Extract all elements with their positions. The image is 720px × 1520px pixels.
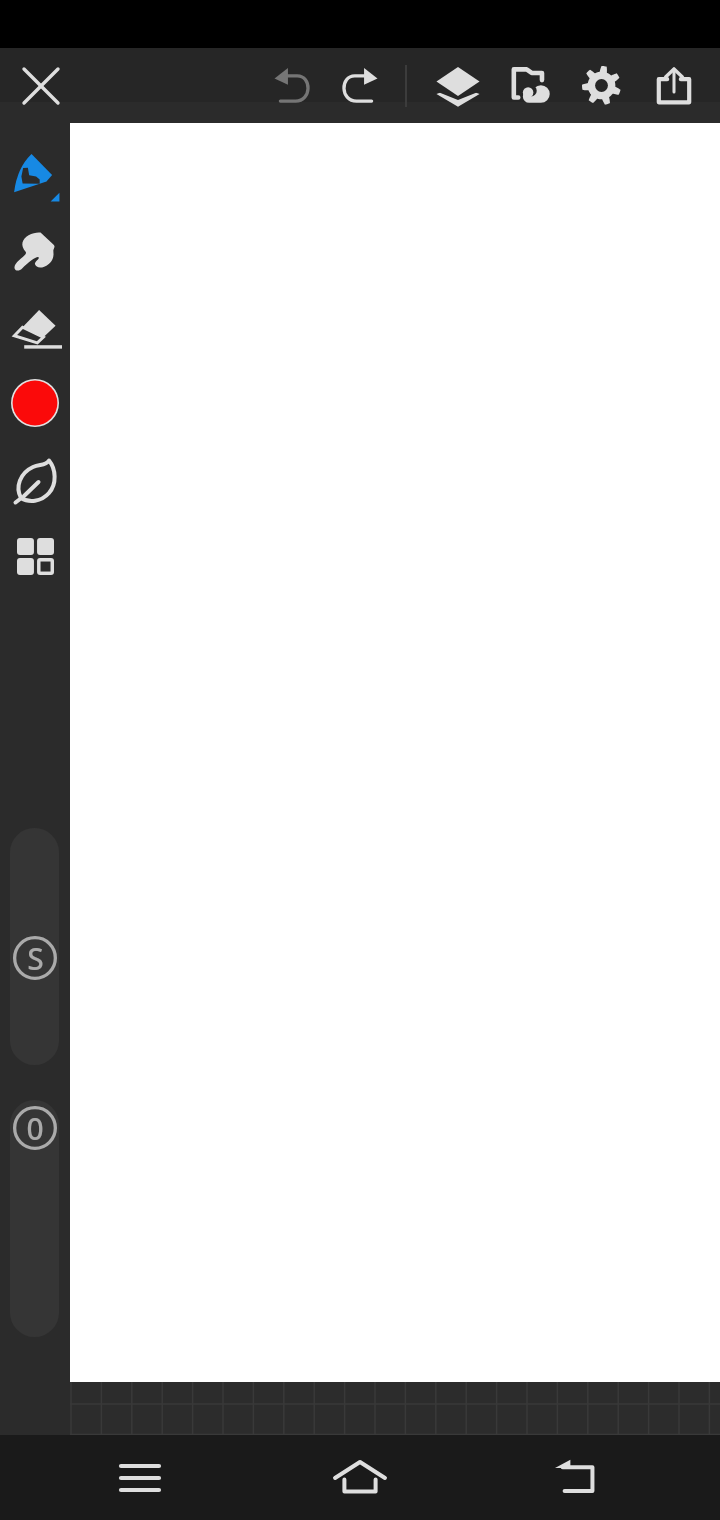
button[interactable]: Close <box>8 48 74 123</box>
button[interactable]: Recent apps <box>85 1435 195 1520</box>
button[interactable]: Layout <box>0 521 70 591</box>
button[interactable]: Color <box>0 368 70 438</box>
button[interactable]: Brush <box>0 141 70 211</box>
staticText: 0 <box>26 1108 44 1149</box>
button[interactable]: Value 0 <box>13 1106 57 1150</box>
button[interactable]: Settings <box>568 48 634 123</box>
staticText: S <box>27 938 44 979</box>
button[interactable]: Home <box>305 1435 415 1520</box>
button[interactable]: Smudge <box>0 216 70 286</box>
button[interactable]: Leaf <box>0 446 70 516</box>
button[interactable]: Value S <box>13 936 57 980</box>
button[interactable]: Slider <box>10 828 59 1065</box>
button[interactable]: Slider <box>10 1100 59 1337</box>
button[interactable]: Undo <box>260 48 326 123</box>
button[interactable]: Share <box>641 48 707 123</box>
button[interactable]: Eraser <box>0 294 70 364</box>
button[interactable]: Gallery <box>497 48 563 123</box>
button[interactable]: Redo <box>326 48 392 123</box>
button[interactable]: Back <box>524 1435 634 1520</box>
button[interactable]: Layers <box>425 48 491 123</box>
